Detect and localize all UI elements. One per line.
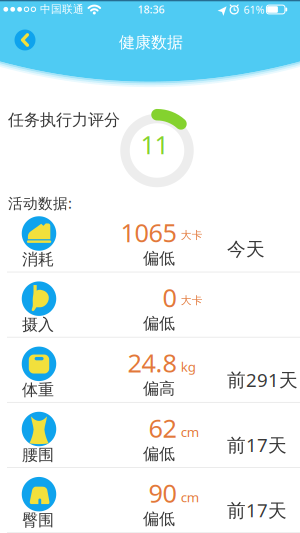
staticText: 消耗 xyxy=(22,250,54,269)
staticText: 偏高 xyxy=(143,379,175,398)
staticText: 62 xyxy=(148,411,176,445)
staticText: 体重 xyxy=(22,380,54,400)
staticText: 前17天 xyxy=(227,432,287,457)
staticText: 偏低 xyxy=(143,509,175,529)
staticText: 偏低 xyxy=(143,248,175,268)
staticText: 11 xyxy=(141,127,169,161)
button[interactable]: 消耗 xyxy=(0,207,300,272)
button[interactable]: 体重 xyxy=(0,338,300,403)
staticText: kg xyxy=(181,358,196,375)
staticText: cm xyxy=(181,423,199,441)
staticText: 健康数据 xyxy=(119,33,183,52)
staticText: 中国联通 xyxy=(40,3,84,16)
staticText: 腰围 xyxy=(22,445,54,465)
staticText: 摄入 xyxy=(22,315,54,334)
staticText: 18:36 xyxy=(137,2,164,16)
staticText: 臀围 xyxy=(22,510,54,530)
staticText: 大卡 xyxy=(181,229,203,242)
staticText: 90 xyxy=(148,476,176,510)
staticText: 0 xyxy=(162,281,176,314)
staticText: cm xyxy=(181,488,199,506)
staticText: 今天 xyxy=(227,238,265,261)
staticText: 活动数据: xyxy=(8,193,72,213)
staticText: 任务执行力评分 xyxy=(8,110,120,130)
button[interactable]: 臀围 xyxy=(0,468,300,533)
button[interactable] xyxy=(14,29,35,50)
staticText: 前17天 xyxy=(227,498,287,522)
staticText: 偏低 xyxy=(143,444,175,464)
button[interactable]: 腰围 xyxy=(0,403,300,468)
staticText: 1065 xyxy=(120,215,176,249)
staticText: 前291天 xyxy=(227,367,298,392)
staticText: 偏低 xyxy=(143,314,175,333)
button[interactable]: 摄入 xyxy=(0,272,300,338)
staticText: 大卡 xyxy=(181,294,203,307)
staticText: 24.8 xyxy=(127,346,176,379)
staticText: 61% xyxy=(243,2,264,17)
